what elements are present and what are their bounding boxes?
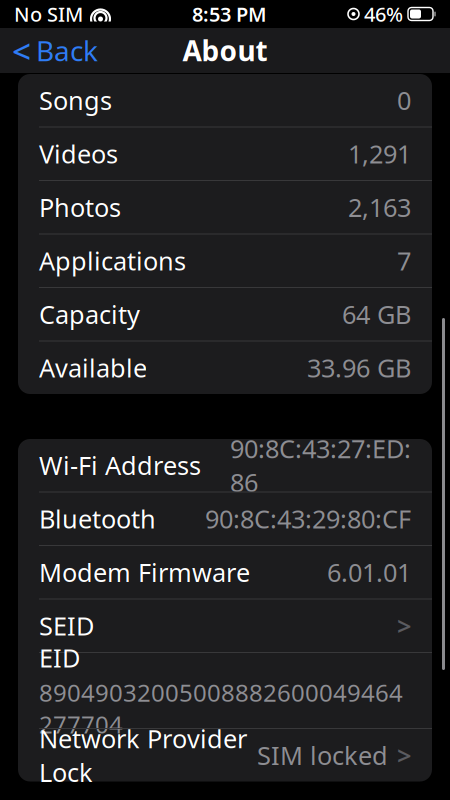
staticText: 90:8C:43:27:ED:86 [230, 432, 411, 499]
staticText: Capacity [39, 297, 140, 331]
staticText: Network Provider Lock [39, 722, 247, 789]
staticText: No SIM [14, 1, 83, 27]
staticText: 6.01.01 [327, 555, 411, 589]
staticText: EID [39, 641, 80, 674]
button[interactable]: Wi-Fi Address [18, 439, 432, 491]
button[interactable]: Network Provider Lock [18, 729, 432, 781]
staticText: Applications [39, 244, 186, 277]
staticText: 8:53 PM [192, 1, 267, 27]
button[interactable]: SEID [18, 599, 432, 652]
staticText: SEID [39, 609, 94, 642]
staticText: > [397, 609, 411, 642]
staticText: 33.96 GB [307, 351, 411, 384]
staticText: 89049032005008882600049464277704 [39, 676, 403, 740]
button[interactable]: < [0, 22, 98, 79]
button[interactable]: Capacity [18, 288, 432, 340]
staticText: 64 GB [342, 297, 411, 331]
staticText: 2,163 [348, 190, 411, 224]
staticText: Bluetooth [39, 502, 156, 535]
staticText: 46% [364, 1, 403, 27]
button[interactable]: Songs [18, 74, 432, 126]
button[interactable]: Videos [18, 127, 432, 180]
button[interactable]: EID [18, 653, 432, 728]
staticText: Modem Firmware [39, 555, 250, 589]
button[interactable]: Applications [18, 234, 432, 287]
staticText: Photos [39, 190, 121, 224]
staticText: Wi-Fi Address [39, 448, 201, 482]
staticText: Back [36, 32, 98, 69]
staticText: Videos [39, 137, 118, 170]
button[interactable]: Modem Firmware [18, 546, 432, 598]
staticText: 7 [397, 244, 411, 277]
staticText: 90:8C:43:29:80:CF [205, 502, 411, 535]
staticText: 0 [397, 83, 411, 117]
staticText: Available [39, 351, 147, 384]
staticText: 1,291 [348, 137, 411, 170]
button[interactable]: Bluetooth [18, 492, 432, 545]
button[interactable]: Photos [18, 181, 432, 233]
staticText: Songs [39, 83, 112, 117]
staticText: > [397, 738, 411, 772]
staticText: SIM locked [257, 738, 388, 772]
button[interactable]: Available [18, 341, 432, 394]
staticText: About [182, 32, 267, 69]
staticText: < [12, 28, 31, 73]
